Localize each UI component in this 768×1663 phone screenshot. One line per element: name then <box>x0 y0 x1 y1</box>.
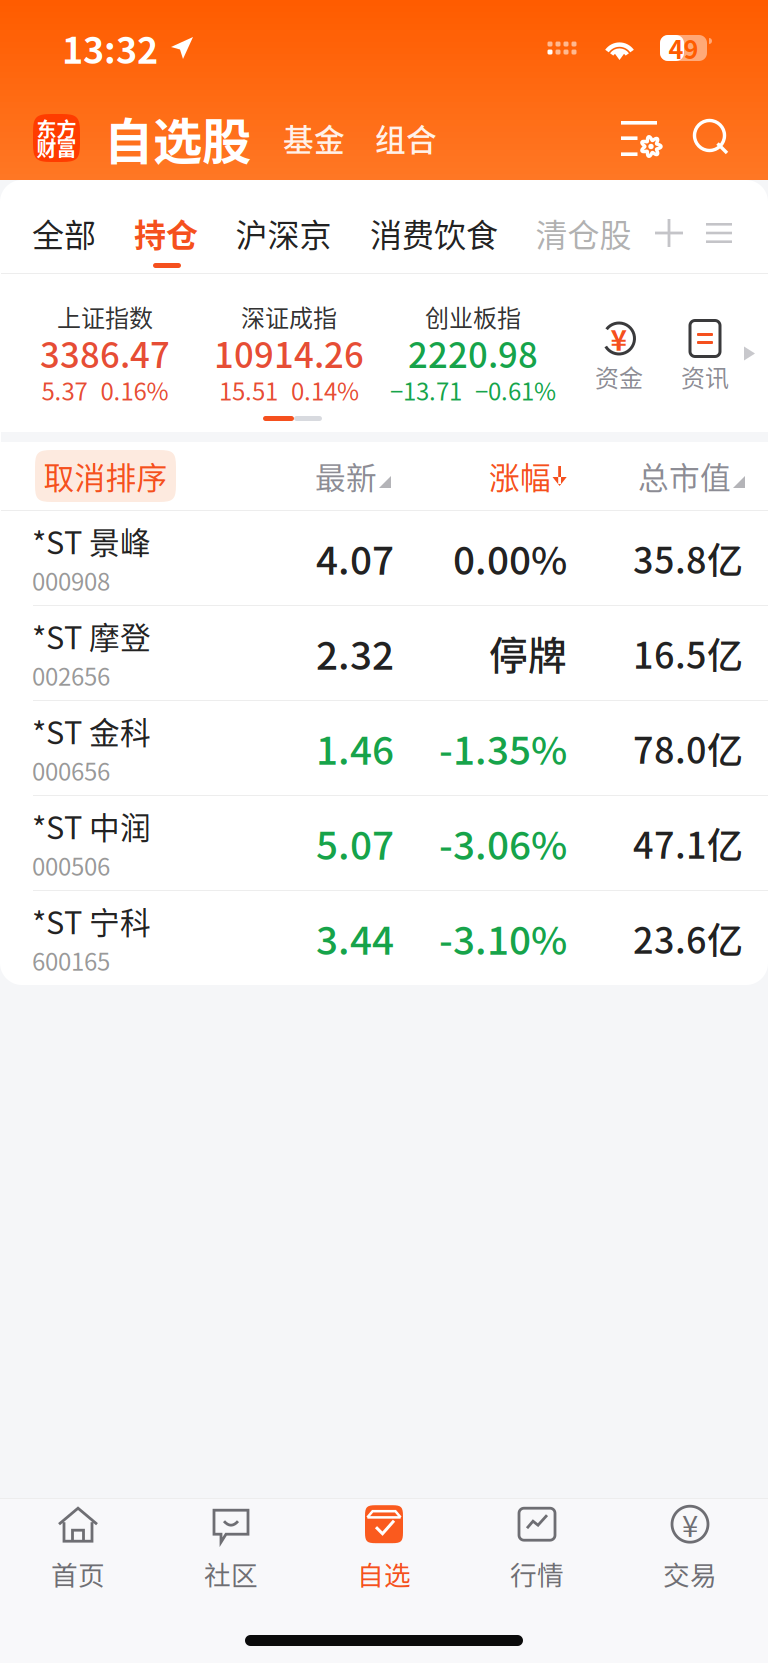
button[interactable]: 消费饮食 <box>372 203 496 263</box>
staticText: 财富 <box>36 133 76 162</box>
staticText: 停牌 <box>489 625 567 681</box>
button[interactable]: 自选股 <box>104 102 251 174</box>
staticText: 23.6亿 <box>633 912 743 964</box>
staticText: 消费饮食 <box>370 210 498 256</box>
button[interactable]: 深证成指 <box>197 301 381 406</box>
staticText: 0.00% <box>453 530 567 586</box>
button[interactable]: 总市值 <box>569 450 745 502</box>
button[interactable]: 东方财富 <box>33 114 80 162</box>
staticText: 3386.47 <box>40 328 170 378</box>
staticText: 10914.26 <box>214 328 364 378</box>
button[interactable]: 资讯 <box>672 313 738 393</box>
staticText: 16.5亿 <box>633 627 743 679</box>
button[interactable]: 清仓股 <box>537 203 630 263</box>
staticText: -1.35% <box>439 720 567 776</box>
staticText: 全部 <box>32 210 96 256</box>
button[interactable]: 首页 <box>1 1499 154 1593</box>
staticText: −0.61% <box>475 373 556 407</box>
button[interactable]: 取消排序 <box>35 450 176 502</box>
button[interactable]: 上证指数 <box>13 301 197 406</box>
button[interactable]: 自选 <box>307 1499 460 1593</box>
staticText: 47.1亿 <box>633 817 743 869</box>
staticText: 3.44 <box>316 910 394 966</box>
staticText: 49 <box>668 30 698 66</box>
staticText: 首页 <box>51 1554 105 1593</box>
button[interactable]: 行情 <box>460 1499 613 1593</box>
button[interactable]: 沪深京 <box>237 203 330 263</box>
staticText: 涨幅 <box>489 454 551 498</box>
staticText: 取消排序 <box>43 454 167 498</box>
staticText: 自选股 <box>104 102 251 174</box>
button[interactable]: ¥ <box>613 1499 766 1593</box>
staticText: 创业板指 <box>425 299 521 334</box>
staticText: *ST 宁科 <box>32 899 151 943</box>
staticText: 交易 <box>663 1554 717 1593</box>
button[interactable]: 添加自选 <box>654 203 684 263</box>
staticText: 5.07 <box>316 815 394 871</box>
staticText: 13:32 <box>62 22 158 74</box>
staticText: 行情 <box>510 1554 564 1593</box>
button[interactable]: 最新 <box>281 450 391 502</box>
staticText: 资金 <box>595 359 643 394</box>
staticText: 600165 <box>32 943 110 978</box>
button[interactable]: 涨幅 <box>391 450 569 502</box>
staticText: 沪深京 <box>235 210 331 256</box>
staticText: 2.32 <box>316 625 394 681</box>
button[interactable]: *ST 宁科 <box>0 891 768 985</box>
staticText: 东方 <box>36 114 76 143</box>
staticText: 社区 <box>204 1554 258 1593</box>
staticText: *ST 摩登 <box>32 614 151 658</box>
staticText: ¥ <box>682 1503 698 1545</box>
staticText: 002656 <box>32 658 110 693</box>
staticText: 1.46 <box>316 720 394 776</box>
button[interactable]: 列表设置 <box>618 116 662 160</box>
button[interactable]: 分组管理 <box>704 203 734 263</box>
staticText: 基金 <box>283 116 345 160</box>
staticText: 0.16% <box>100 373 168 407</box>
staticText: 35.8亿 <box>633 532 743 584</box>
staticText: 上证指数 <box>57 299 153 334</box>
staticText: 15.51 <box>219 373 278 407</box>
staticText: 4.07 <box>316 530 394 586</box>
button[interactable]: 持仓 <box>135 203 197 263</box>
staticText: 深证成指 <box>241 299 337 334</box>
staticText: 000656 <box>32 753 110 788</box>
staticText: 清仓股 <box>535 210 631 256</box>
staticText: 资讯 <box>681 359 729 394</box>
button[interactable]: 基金 <box>283 116 345 160</box>
staticText: 自选 <box>357 1554 411 1593</box>
staticText: 总市值 <box>638 454 731 498</box>
staticText: 000908 <box>32 563 110 598</box>
staticText: 78.0亿 <box>633 722 743 774</box>
staticText: -3.06% <box>439 815 567 871</box>
staticText: ¥ <box>610 318 627 359</box>
staticText: -3.10% <box>439 910 567 966</box>
staticText: 持仓 <box>134 210 198 256</box>
button[interactable]: *ST 摩登 <box>0 606 768 700</box>
button[interactable]: *ST 景峰 <box>0 511 768 605</box>
button[interactable]: ¥ <box>586 313 652 393</box>
staticText: *ST 景峰 <box>32 519 151 563</box>
staticText: 0.14% <box>291 373 359 407</box>
staticText: 5.37 <box>41 373 87 407</box>
button[interactable]: 搜索 <box>690 116 734 160</box>
button[interactable]: 全部 <box>33 203 95 263</box>
staticText: −13.71 <box>390 373 462 407</box>
staticText: 000506 <box>32 848 110 883</box>
button[interactable]: *ST 金科 <box>0 701 768 795</box>
staticText: 2220.98 <box>408 328 538 378</box>
staticText: *ST 中润 <box>32 804 151 848</box>
button[interactable]: *ST 中润 <box>0 796 768 890</box>
staticText: 最新 <box>315 454 377 498</box>
staticText: *ST 金科 <box>32 709 151 753</box>
button[interactable]: 社区 <box>154 1499 307 1593</box>
staticText: 组合 <box>375 116 437 160</box>
button[interactable]: 创业板指 <box>381 301 565 406</box>
button[interactable]: 组合 <box>375 116 437 160</box>
